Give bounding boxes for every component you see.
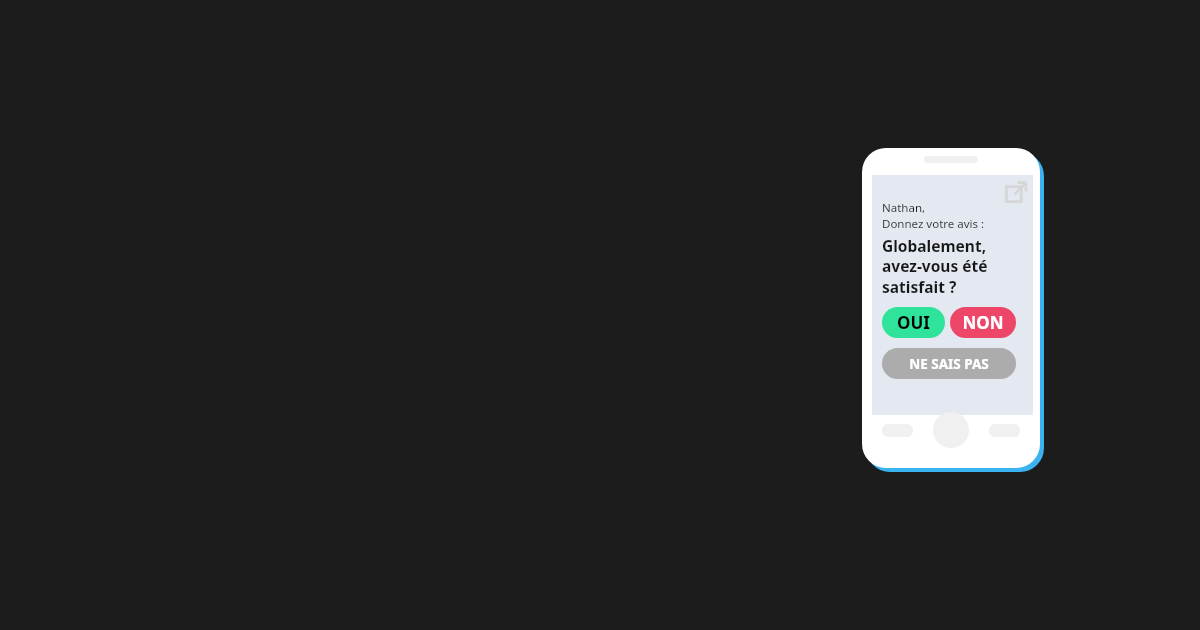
staticText: NON xyxy=(962,311,1004,334)
button[interactable]: OUI xyxy=(882,307,945,338)
staticText: OUI xyxy=(897,311,930,334)
button[interactable]: Open in new window xyxy=(1003,179,1029,205)
button[interactable]: Back xyxy=(882,424,913,437)
button[interactable]: Home xyxy=(933,412,969,448)
button[interactable]: NON xyxy=(950,307,1016,338)
staticText: Globalement, avez-vous été satisfait ? xyxy=(882,235,988,298)
staticText: NE SAIS PAS xyxy=(909,355,989,373)
button[interactable]: NE SAIS PAS xyxy=(882,348,1016,379)
staticText: Nathan, xyxy=(882,200,926,216)
button[interactable]: Recent apps xyxy=(989,424,1020,437)
staticText: Donnez votre avis : xyxy=(882,216,985,232)
